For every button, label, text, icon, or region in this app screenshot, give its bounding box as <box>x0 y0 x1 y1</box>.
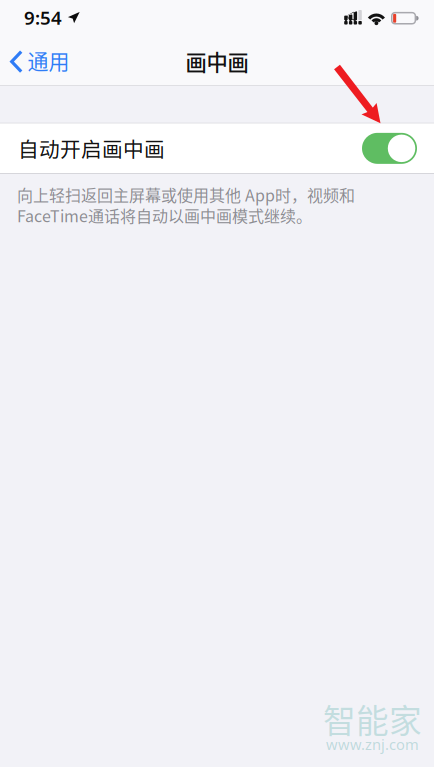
staticText: 通用 <box>27 45 69 75</box>
staticText: 自动开启画中画 <box>18 133 165 163</box>
button[interactable]: 通用 <box>0 38 79 85</box>
staticText: 画中画 <box>185 46 248 77</box>
staticText: www.znj.com <box>326 734 419 754</box>
staticText: 9:54 <box>24 5 62 30</box>
staticText: 向上轻扫返回主屏幕或使用其他 App时，视频和 <box>17 183 355 206</box>
staticText: FaceTime通话将自动以画中画模式继续。 <box>17 204 312 227</box>
staticText: 智能家 <box>323 695 422 742</box>
button[interactable]: 自动开启画中画 <box>0 123 434 173</box>
